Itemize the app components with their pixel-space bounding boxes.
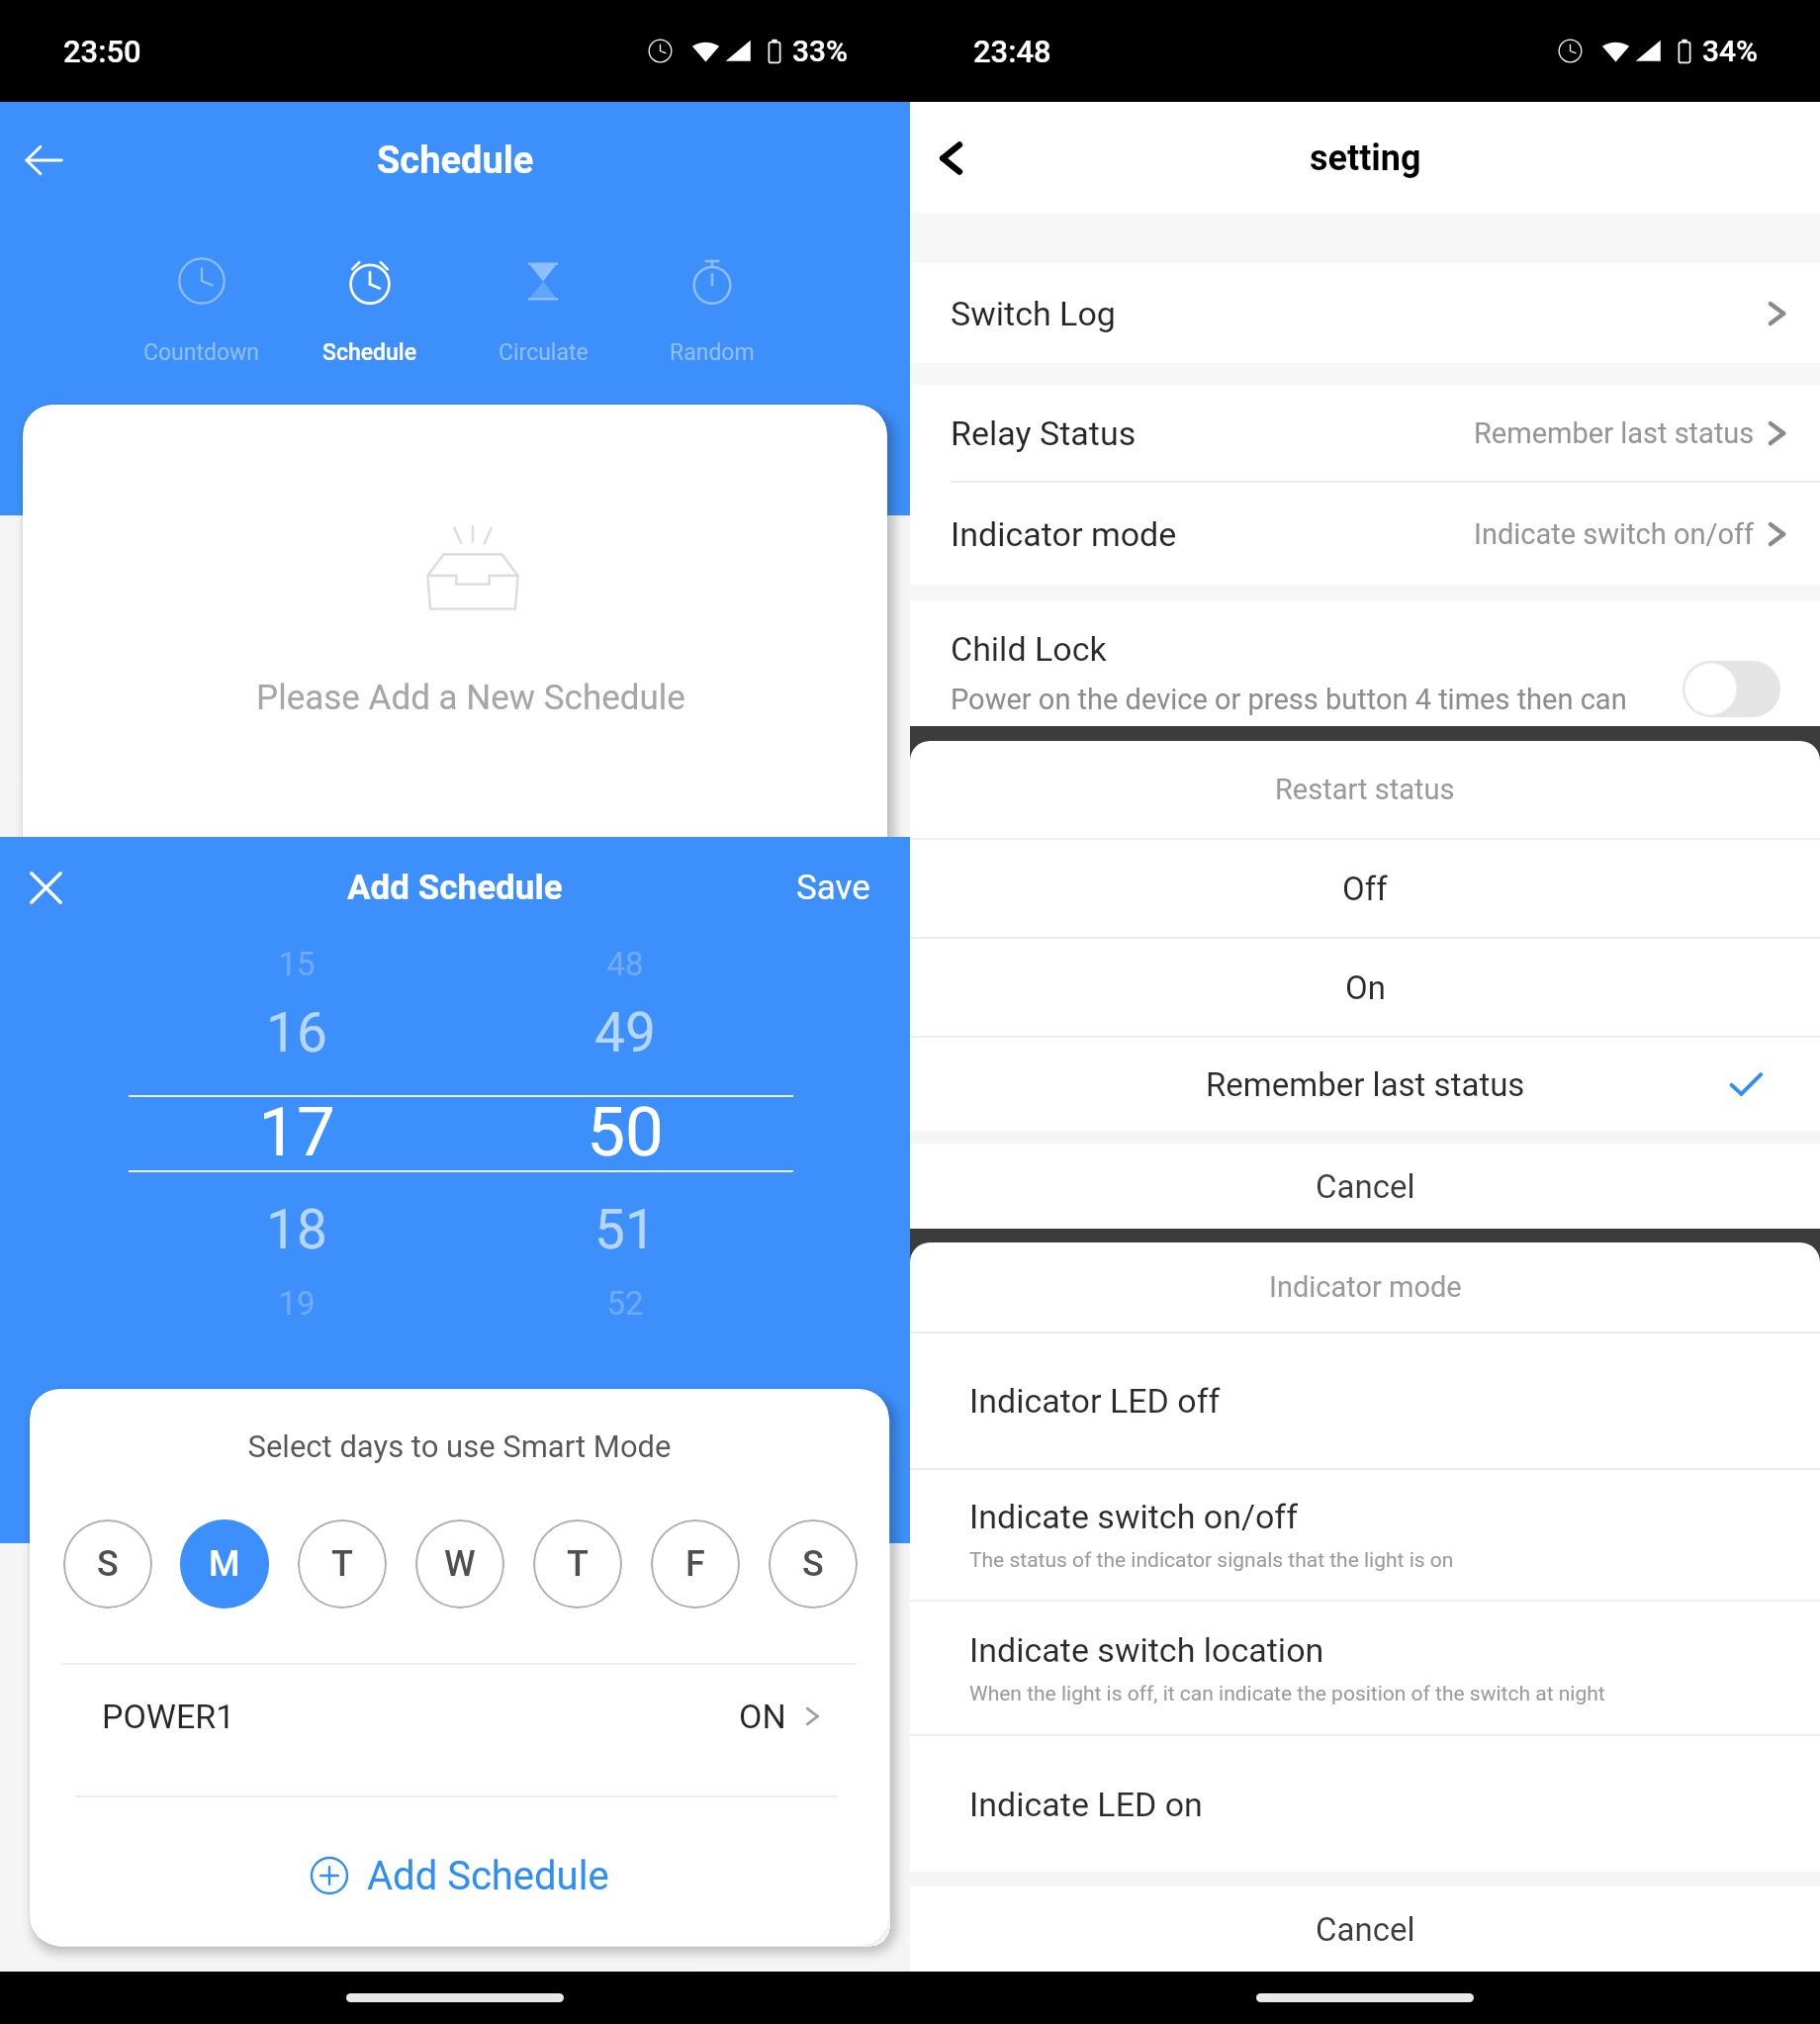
- staticText: Switch Log: [951, 294, 1116, 333]
- staticText: Schedule: [322, 339, 417, 366]
- staticText: When the light is off, it can indicate t…: [969, 1682, 1605, 1706]
- staticText: Indicator LED off: [969, 1381, 1221, 1421]
- staticText: 18: [188, 1198, 406, 1261]
- staticText: 52: [516, 1284, 734, 1323]
- staticText: Add Schedule: [367, 1853, 609, 1899]
- staticText: T: [331, 1543, 353, 1585]
- button[interactable]: F: [651, 1519, 740, 1609]
- button[interactable]: Indicate switch location: [910, 1602, 1820, 1734]
- staticText: Cancel: [1316, 1910, 1415, 1949]
- staticText: Save: [796, 868, 870, 908]
- button[interactable]: Cancel: [910, 1144, 1820, 1229]
- staticText: Off: [1342, 870, 1388, 908]
- staticText: Select days to use Smart Mode: [30, 1428, 889, 1464]
- staticText: Countdown: [143, 339, 260, 366]
- button[interactable]: T: [298, 1519, 387, 1609]
- staticText: On: [1345, 968, 1386, 1007]
- staticText: F: [685, 1543, 705, 1585]
- staticText: Indicate switch on/off: [969, 1497, 1299, 1536]
- staticText: The status of the indicator signals that…: [969, 1548, 1454, 1573]
- button[interactable]: Schedule: [286, 254, 454, 366]
- staticText: 48: [516, 945, 734, 983]
- staticText: 23:48: [973, 34, 1051, 69]
- button[interactable]: Child Lock toggle: [1683, 661, 1780, 717]
- button[interactable]: S: [769, 1519, 858, 1609]
- button[interactable]: Relay Status: [910, 385, 1820, 481]
- button[interactable]: Indicator LED off: [910, 1334, 1820, 1468]
- staticText: POWER1: [102, 1697, 235, 1736]
- button[interactable]: M: [180, 1519, 269, 1609]
- staticText: Circulate: [499, 339, 589, 366]
- staticText: Indicate LED on: [969, 1785, 1203, 1824]
- button[interactable]: Back: [910, 114, 999, 203]
- button[interactable]: POWER1: [30, 1670, 889, 1762]
- button[interactable]: Save: [796, 868, 870, 908]
- button[interactable]: Indicator mode: [910, 483, 1820, 585]
- staticText: 51: [516, 1198, 734, 1261]
- staticText: 15: [188, 945, 406, 983]
- button[interactable]: Indicate LED on: [910, 1736, 1820, 1872]
- staticText: Restart status: [1275, 773, 1455, 806]
- button[interactable]: Add Schedule: [30, 1836, 889, 1915]
- staticText: M: [209, 1543, 240, 1585]
- staticText: 23:50: [63, 34, 141, 69]
- staticText: Add Schedule: [347, 868, 563, 908]
- button[interactable]: Countdown: [118, 254, 286, 366]
- staticText: Random: [670, 339, 755, 366]
- staticText: Power on the device or press button 4 ti…: [951, 683, 1627, 716]
- button[interactable]: Switch Log: [910, 263, 1820, 363]
- staticText: Indicate switch location: [969, 1630, 1324, 1670]
- staticText: ON: [739, 1697, 786, 1736]
- staticText: 16: [188, 1001, 406, 1064]
- staticText: setting: [1310, 138, 1421, 179]
- staticText: Schedule: [377, 138, 534, 183]
- button[interactable]: Indicate switch on/off: [910, 1470, 1820, 1600]
- staticText: Indicator mode: [1269, 1270, 1462, 1304]
- button[interactable]: T: [533, 1519, 622, 1609]
- button[interactable]: Off: [910, 840, 1820, 937]
- staticText: Relay Status: [951, 414, 1137, 453]
- button[interactable]: W: [415, 1519, 504, 1609]
- staticText: Cancel: [1316, 1167, 1415, 1206]
- staticText: Remember last status: [1474, 416, 1755, 450]
- staticText: 49: [516, 1001, 734, 1064]
- staticText: 19: [188, 1284, 406, 1323]
- staticText: S: [802, 1543, 824, 1585]
- button[interactable]: Close: [0, 842, 91, 933]
- button[interactable]: Random: [628, 254, 796, 366]
- staticText: Indicate switch on/off: [1474, 517, 1755, 551]
- button[interactable]: Cancel: [910, 1886, 1820, 1972]
- staticText: Child Lock: [951, 629, 1107, 669]
- staticText: Please Add a New Schedule: [39, 678, 887, 718]
- staticText: Indicator mode: [951, 514, 1177, 554]
- staticText: 34%: [1702, 34, 1759, 68]
- staticText: S: [97, 1543, 119, 1585]
- button[interactable]: On: [910, 939, 1820, 1036]
- button[interactable]: Back: [0, 113, 95, 208]
- button[interactable]: Circulate: [459, 254, 627, 366]
- staticText: 17: [188, 1092, 406, 1172]
- staticText: W: [444, 1543, 476, 1585]
- staticText: T: [567, 1543, 589, 1585]
- button[interactable]: S: [63, 1519, 152, 1609]
- staticText: 33%: [792, 34, 849, 68]
- button[interactable]: Remember last status: [910, 1038, 1820, 1131]
- staticText: Remember last status: [1206, 1065, 1525, 1104]
- staticText: 50: [516, 1092, 734, 1172]
